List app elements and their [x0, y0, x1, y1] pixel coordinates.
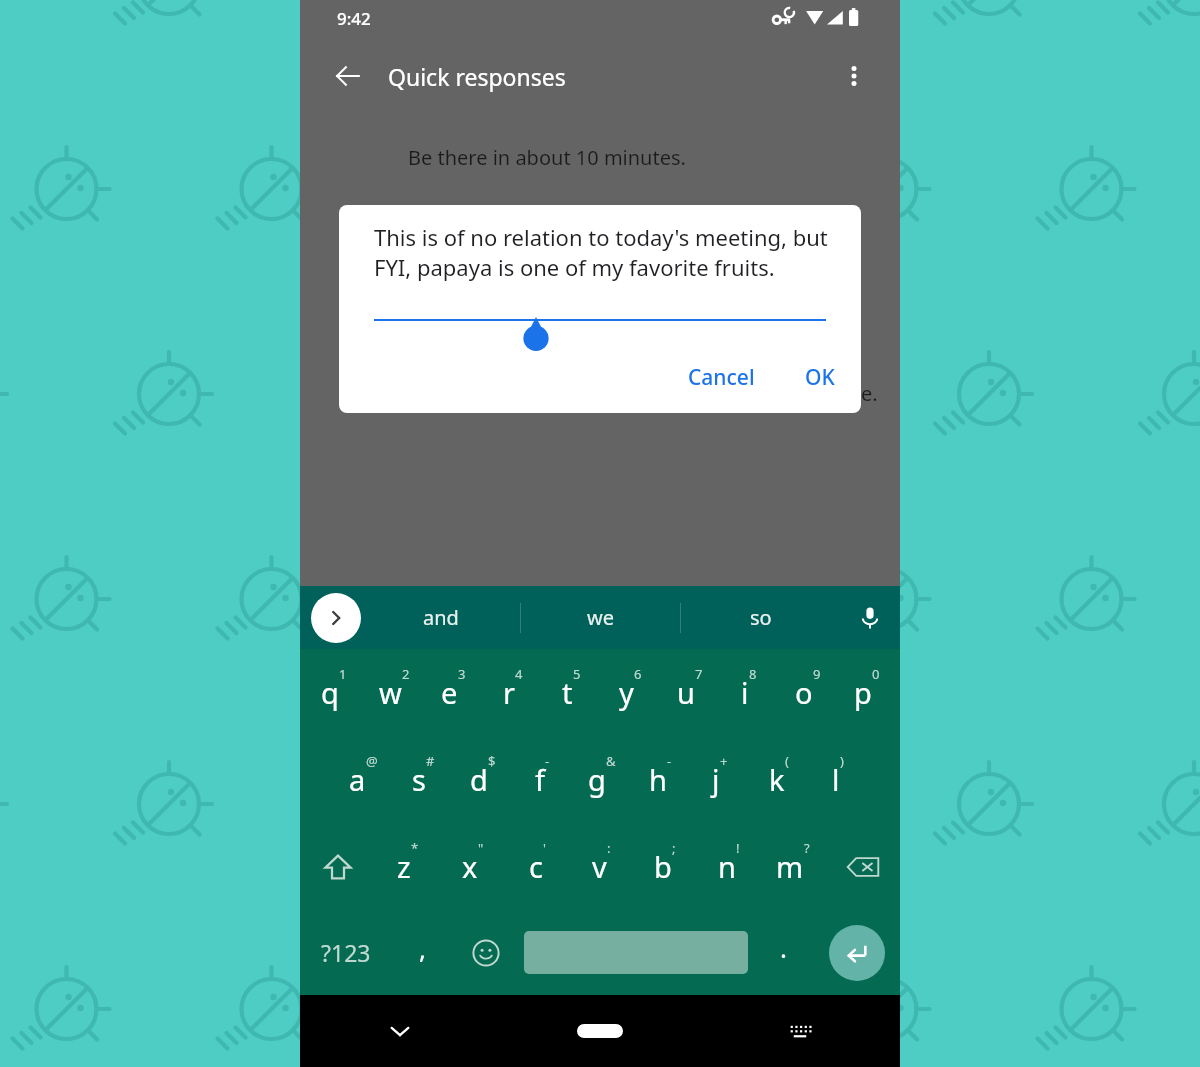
staticText: n	[718, 847, 736, 886]
button[interactable]: f	[513, 736, 572, 823]
button[interactable]: l	[808, 736, 867, 823]
button[interactable]: b	[633, 823, 697, 910]
button[interactable]: e	[424, 649, 483, 736]
button[interactable]: r	[483, 649, 542, 736]
staticText: so	[750, 604, 772, 631]
staticText: m	[776, 847, 804, 886]
staticText: c	[529, 847, 543, 886]
button[interactable]: Hide keyboard	[300, 995, 500, 1067]
staticText: Cancel	[688, 363, 755, 392]
staticText: h	[649, 760, 667, 799]
staticText: d	[470, 760, 488, 799]
staticText: z	[397, 847, 411, 886]
button[interactable]: u	[660, 649, 719, 736]
staticText: &	[606, 752, 616, 770]
staticText: y	[619, 673, 634, 712]
staticText: i	[741, 673, 749, 712]
staticText: g	[588, 760, 606, 799]
button[interactable]: we	[521, 586, 680, 649]
button[interactable]: s	[393, 736, 453, 823]
staticText: !	[736, 839, 740, 857]
staticText: '	[543, 839, 546, 857]
button[interactable]: Shift	[300, 823, 375, 910]
button[interactable]: ,	[392, 910, 452, 995]
staticText: 2	[402, 665, 410, 683]
staticText: x	[462, 847, 478, 886]
button[interactable]: Cancel	[672, 354, 771, 401]
button[interactable]: p	[837, 649, 896, 736]
staticText: "	[478, 839, 484, 857]
button[interactable]: o	[778, 649, 837, 736]
staticText: w	[379, 673, 402, 712]
staticText: 1	[339, 665, 347, 683]
staticText: ;	[672, 839, 676, 857]
staticText: v	[592, 847, 607, 886]
staticText: @	[366, 752, 378, 770]
button[interactable]: Backspace	[825, 823, 900, 910]
button[interactable]: n	[697, 823, 761, 910]
button[interactable]: Home	[500, 995, 700, 1067]
staticText: a	[349, 760, 366, 799]
staticText: 9:42	[337, 7, 371, 30]
button[interactable]: q	[304, 649, 364, 736]
staticText: OK	[805, 363, 835, 392]
staticText: .	[780, 930, 787, 965]
button[interactable]: Expand suggestions	[311, 593, 361, 643]
staticText: ,	[419, 931, 426, 966]
staticText: o	[795, 673, 813, 712]
staticText: )	[840, 752, 844, 770]
button[interactable]: g	[572, 736, 631, 823]
button[interactable]: v	[569, 823, 633, 910]
button[interactable]: j	[690, 736, 749, 823]
button[interactable]: k	[749, 736, 808, 823]
staticText: $	[488, 752, 496, 770]
button[interactable]: Space	[524, 931, 748, 974]
staticText: -	[667, 752, 672, 770]
staticText: 5	[573, 665, 581, 683]
staticText: t	[562, 673, 573, 712]
button[interactable]: w	[364, 649, 424, 736]
button[interactable]: x	[440, 823, 505, 910]
staticText: 9	[813, 665, 821, 683]
button[interactable]: i	[719, 649, 778, 736]
button[interactable]: Enter	[829, 925, 885, 981]
staticText: e.	[861, 380, 878, 407]
button[interactable]: t	[542, 649, 601, 736]
staticText: Be there in about 10 minutes.	[408, 144, 686, 171]
button[interactable]: More options	[830, 52, 878, 100]
staticText: e	[441, 673, 458, 712]
staticText: b	[654, 847, 672, 886]
button[interactable]: and	[361, 586, 520, 649]
staticText: +	[720, 752, 728, 770]
button[interactable]: d	[453, 736, 513, 823]
button[interactable]: Voice input	[840, 586, 900, 649]
staticText: 6	[634, 665, 642, 683]
button[interactable]: c	[505, 823, 569, 910]
button[interactable]: y	[601, 649, 660, 736]
button[interactable]: so	[681, 586, 840, 649]
button[interactable]: a	[333, 736, 393, 823]
button[interactable]: Back	[324, 52, 372, 100]
staticText: 4	[515, 665, 523, 683]
button[interactable]: z	[375, 823, 440, 910]
button[interactable]: .	[752, 910, 814, 995]
staticText: l	[832, 760, 840, 799]
staticText: k	[769, 760, 785, 799]
staticText: p	[854, 673, 872, 712]
staticText: q	[321, 673, 339, 712]
staticText: :	[607, 839, 611, 857]
button[interactable]: h	[631, 736, 690, 823]
staticText: 8	[749, 665, 757, 683]
button[interactable]: m	[761, 823, 825, 910]
button[interactable]: Switch keyboard	[700, 995, 900, 1067]
staticText: u	[677, 673, 695, 712]
button[interactable]: ?123	[300, 910, 392, 995]
staticText: 7	[695, 665, 703, 683]
staticText: *	[411, 839, 419, 857]
staticText: ?123	[321, 937, 371, 968]
staticText: s	[412, 760, 426, 799]
staticText: 0	[872, 665, 880, 683]
button[interactable]: OK	[789, 354, 851, 401]
button[interactable]: Emoji	[452, 910, 520, 995]
staticText: j	[712, 760, 720, 799]
